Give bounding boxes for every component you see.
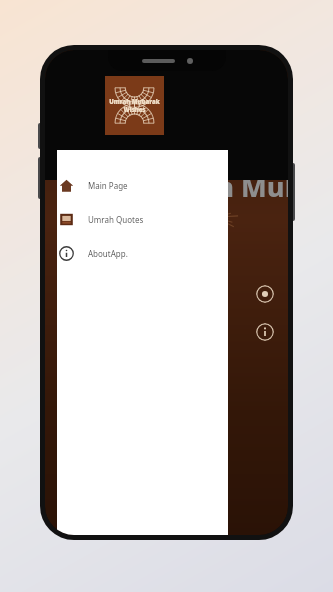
staticText: Umrah Quotes <box>88 214 144 225</box>
button[interactable]: Information <box>256 323 274 341</box>
staticText: Umrah Mubarak <box>141 168 288 205</box>
staticText: Main Page <box>88 180 128 191</box>
staticText: AboutApp. <box>88 248 128 259</box>
staticText: Umrah Mubarak Wishes <box>109 98 160 114</box>
button[interactable]: Main Page <box>57 168 228 202</box>
button[interactable]: AboutApp. <box>57 236 228 270</box>
button[interactable]: Record <box>256 285 274 303</box>
button[interactable]: Umrah Quotes <box>57 202 228 236</box>
